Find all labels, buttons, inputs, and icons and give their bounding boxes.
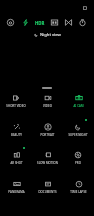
staticText: AI CAM — [73, 104, 84, 108]
staticText: DOCUMENTS — [38, 190, 57, 194]
staticText: SHORT VIDEO — [6, 104, 26, 108]
button[interactable]: AI CAM — [63, 92, 93, 112]
staticText: VIDEO — [43, 104, 52, 108]
button[interactable]: SUPER NIGHT — [63, 121, 93, 141]
button[interactable]: Aspect ratio — [49, 17, 60, 28]
staticText: PRO — [75, 161, 81, 165]
button[interactable]: AR SHOT — [1, 149, 31, 169]
button[interactable]: TIME LAPSE — [63, 178, 93, 198]
staticText: SUPER NIGHT — [68, 133, 88, 137]
button[interactable]: Night view — [34, 32, 61, 38]
button[interactable]: PRO — [63, 149, 93, 169]
staticText: Night view — [40, 32, 61, 38]
staticText: PORTRAIT — [40, 133, 55, 137]
button[interactable]: SHORT VIDEO — [1, 92, 31, 112]
button[interactable]: Timer — [77, 17, 88, 28]
button[interactable]: Flash — [20, 17, 31, 28]
button[interactable]: DOCUMENTS — [32, 178, 62, 198]
button[interactable]: BEAUTY — [1, 121, 31, 141]
staticText: AR SHOT — [10, 161, 23, 165]
button[interactable]: SLOW MOTION — [32, 149, 62, 169]
staticText: BEAUTY — [11, 133, 22, 137]
staticText: PANORAMA — [8, 190, 25, 194]
staticText: SLOW MOTION — [37, 161, 58, 165]
button[interactable]: Filters — [63, 17, 74, 28]
button[interactable]: VIDEO — [32, 92, 62, 112]
button[interactable]: PANORAMA — [1, 178, 31, 198]
button[interactable]: PORTRAIT — [32, 121, 62, 141]
staticText: TIME LAPSE — [70, 190, 87, 194]
button[interactable]: HDR — [35, 20, 45, 26]
staticText: HDR — [35, 20, 45, 26]
button[interactable]: Settings — [5, 17, 16, 28]
other: Battery — [83, 6, 87, 10]
